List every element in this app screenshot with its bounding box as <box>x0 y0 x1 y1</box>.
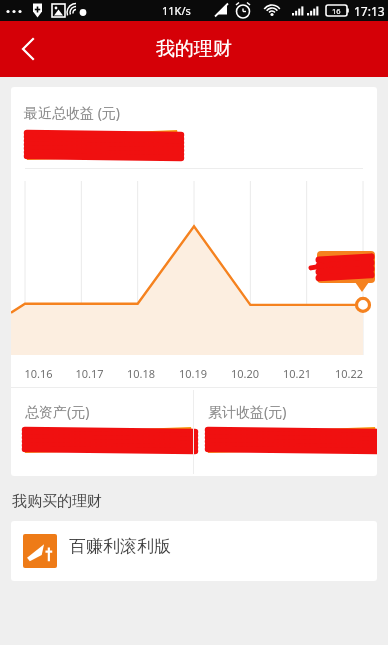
staticText: 总资产(元) <box>25 402 90 421</box>
staticText: 10.21 <box>271 366 323 381</box>
staticText: 最近总收益 (元) <box>24 103 121 122</box>
button[interactable]: Back <box>0 23 52 75</box>
staticText: 10.20 <box>219 366 271 381</box>
button[interactable]: 百赚利滚利版 <box>11 521 377 581</box>
staticText: 累计收益(元) <box>208 402 287 421</box>
staticText: 10.16 <box>13 366 64 381</box>
staticText: 我购买的理财 <box>12 492 388 511</box>
staticText: 我的理财 <box>156 37 232 61</box>
button[interactable]: 总资产(元) <box>11 388 193 476</box>
staticText: 17:13 <box>354 3 385 19</box>
staticText: 11K/s <box>162 3 191 18</box>
staticText: 16 <box>332 6 341 16</box>
staticText: 百赚利滚利版 <box>69 536 171 557</box>
staticText: 10.18 <box>115 366 167 381</box>
staticText: 10.17 <box>64 366 115 381</box>
staticText: 10.19 <box>167 366 219 381</box>
staticText: 10.22 <box>323 366 375 381</box>
button[interactable]: 累计收益(元) <box>194 388 377 476</box>
